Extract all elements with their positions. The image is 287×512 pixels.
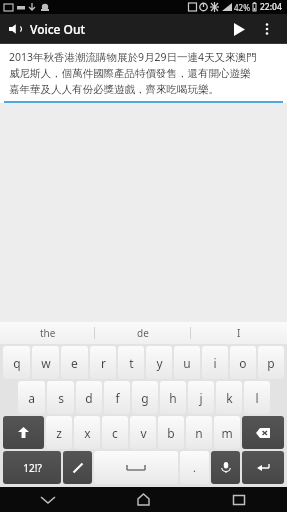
button[interactable]: I (191, 322, 287, 344)
staticText: Voice Out (30, 21, 86, 37)
button[interactable]: v (130, 416, 156, 449)
button[interactable]: Hide keyboard (0, 487, 95, 512)
button[interactable]: Enter (242, 451, 284, 484)
button[interactable]: c (102, 416, 128, 449)
button[interactable]: f (104, 381, 130, 414)
staticText: k (226, 390, 233, 406)
button[interactable]: Home (95, 487, 191, 512)
button[interactable]: 2013年秋香港潮流購物展於9月29日一連4天又來澳門 威尼斯人，個萬件國際產品… (9, 50, 257, 96)
staticText: x (84, 425, 91, 441)
staticText: i (213, 355, 217, 371)
button[interactable]: o (230, 346, 256, 379)
button[interactable]: n (186, 416, 212, 449)
staticText: b (167, 425, 175, 441)
button[interactable]: x (74, 416, 100, 449)
staticText: l (255, 390, 259, 406)
staticText: j (199, 390, 203, 406)
button[interactable]: k (216, 381, 242, 414)
staticText: z (56, 425, 62, 441)
button[interactable]: m (214, 416, 240, 449)
button[interactable]: More options (254, 16, 280, 42)
staticText: m (221, 425, 233, 441)
button[interactable]: i (202, 346, 228, 379)
button[interactable]: l (244, 381, 270, 414)
staticText: p (267, 355, 275, 371)
button[interactable]: j (188, 381, 214, 414)
staticText: g (141, 390, 149, 406)
button[interactable]: de (95, 322, 191, 344)
button[interactable]: Play (224, 14, 254, 44)
button[interactable]: . (180, 451, 209, 484)
button[interactable]: z (46, 416, 72, 449)
staticText: q (13, 355, 21, 371)
button[interactable]: Handwriting (63, 451, 92, 484)
button[interactable]: Shift (3, 416, 44, 449)
staticText: d (85, 390, 93, 406)
button[interactable]: y (146, 346, 172, 379)
staticText: o (239, 355, 247, 371)
button[interactable]: Space (94, 451, 178, 484)
staticText: n (195, 425, 203, 441)
button[interactable]: h (160, 381, 186, 414)
button[interactable]: e (61, 346, 88, 379)
staticText: f (115, 390, 120, 406)
button[interactable]: Recent apps (191, 487, 287, 512)
staticText: u (183, 355, 191, 371)
button[interactable]: s (47, 381, 74, 414)
button[interactable]: r (90, 346, 116, 379)
button[interactable]: Voice Out (7, 21, 23, 37)
staticText: h (169, 390, 177, 406)
staticText: y (156, 355, 163, 371)
button[interactable]: the (0, 322, 95, 344)
staticText: s (58, 390, 64, 406)
button[interactable]: 12!? (3, 451, 61, 484)
staticText: de (137, 326, 149, 340)
staticText: 12!? (23, 461, 42, 475)
staticText: c (112, 425, 118, 441)
staticText: e (71, 355, 78, 371)
staticText: 42% (234, 2, 250, 13)
button[interactable]: Backspace (242, 416, 284, 449)
staticText: t (129, 355, 134, 371)
button[interactable]: p (258, 346, 284, 379)
staticText: w (41, 355, 51, 371)
button[interactable]: Voice input (211, 451, 240, 484)
button[interactable]: q (3, 346, 30, 379)
staticText: v (140, 425, 147, 441)
staticText: 22:04 (260, 1, 282, 13)
button[interactable]: u (174, 346, 200, 379)
button[interactable]: b (158, 416, 184, 449)
button[interactable]: d (76, 381, 102, 414)
button[interactable]: g (132, 381, 158, 414)
staticText: I (237, 326, 241, 340)
staticText: . (193, 460, 196, 475)
button[interactable]: t (118, 346, 144, 379)
button[interactable]: w (32, 346, 59, 379)
button[interactable]: a (18, 381, 45, 414)
staticText: a (28, 390, 35, 406)
staticText: r (101, 355, 106, 371)
staticText: the (40, 326, 56, 340)
